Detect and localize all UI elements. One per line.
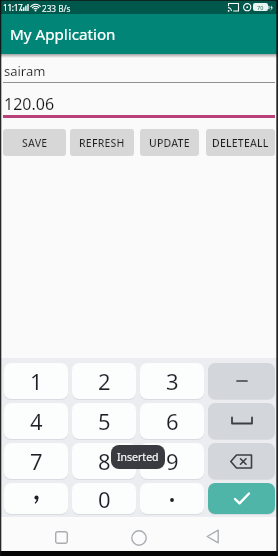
button[interactable]: DELETEALL xyxy=(206,129,275,156)
staticText: 7 xyxy=(30,446,43,476)
button[interactable]: REFRESH xyxy=(70,129,134,156)
staticText: 5 xyxy=(98,406,111,436)
button[interactable]: 0 xyxy=(72,483,136,514)
button[interactable]: 5 xyxy=(72,403,136,439)
staticText: 4 xyxy=(30,406,43,436)
staticText: REFRESH xyxy=(79,136,125,150)
button[interactable]: 9 xyxy=(140,443,204,479)
button[interactable]: 1 xyxy=(4,363,68,399)
button[interactable]: SAVE xyxy=(3,129,66,156)
button[interactable] xyxy=(55,531,68,544)
staticText: 3 xyxy=(166,366,179,396)
button[interactable] xyxy=(208,483,275,514)
button[interactable]: 7 xyxy=(4,443,68,479)
staticText: 11:17 xyxy=(3,2,23,13)
button[interactable] xyxy=(4,483,68,514)
staticText: 120.06 xyxy=(4,93,55,115)
staticText: 2 xyxy=(98,366,111,396)
staticText: 1 xyxy=(30,366,43,396)
button[interactable]: 6 xyxy=(140,403,204,439)
button[interactable] xyxy=(208,363,275,399)
button[interactable] xyxy=(131,530,147,546)
button[interactable]: UPDATE xyxy=(140,129,199,156)
button[interactable] xyxy=(208,443,275,479)
button[interactable] xyxy=(208,403,275,439)
staticText: 6 xyxy=(166,406,179,436)
staticText: 233 B/s xyxy=(42,3,71,14)
staticText: 70 xyxy=(257,4,264,11)
staticText: DELETEALL xyxy=(212,136,269,150)
staticText: UPDATE xyxy=(149,136,190,150)
staticText: sairam xyxy=(4,62,46,80)
button[interactable] xyxy=(140,483,204,514)
button[interactable]: 3 xyxy=(140,363,204,399)
button[interactable]: 2 xyxy=(72,363,136,399)
staticText: My Application xyxy=(10,24,116,45)
button[interactable]: 4 xyxy=(4,403,68,439)
staticText: SAVE xyxy=(22,136,48,150)
button[interactable] xyxy=(0,57,278,84)
staticText: Inserted xyxy=(117,450,159,464)
button[interactable] xyxy=(206,529,220,544)
button[interactable] xyxy=(0,88,278,118)
button[interactable]: 8 xyxy=(72,443,136,479)
staticText: 9 xyxy=(166,446,179,476)
staticText: 8 xyxy=(98,446,111,476)
staticText: 0 xyxy=(98,484,111,514)
